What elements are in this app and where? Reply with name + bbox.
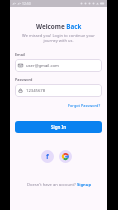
- staticText: Password: [15, 77, 33, 82]
- staticText: Sign In: [51, 124, 67, 130]
- staticText: Doesn't have an account?: [27, 182, 77, 188]
- staticText: user@gmail.com: [26, 63, 60, 69]
- staticText: 12345678: [26, 88, 46, 94]
- staticText: Email: [15, 52, 25, 57]
- button[interactable]: 12345678: [15, 84, 102, 97]
- button[interactable]: user@gmail.com: [15, 59, 102, 72]
- staticText: f: [46, 152, 49, 162]
- button[interactable]: Forgot Password?: [67, 103, 102, 108]
- button[interactable]: Sign In: [15, 121, 102, 133]
- button[interactable]: Signup: [77, 182, 91, 188]
- staticText: 12:50: [22, 1, 31, 6]
- button[interactable]: Sign in with Facebook: [41, 150, 54, 163]
- staticText: Welcome Back: [36, 22, 82, 31]
- staticText: We missed you! Login to continue your jo…: [10, 33, 107, 43]
- button[interactable]: Sign in with Google: [59, 150, 72, 163]
